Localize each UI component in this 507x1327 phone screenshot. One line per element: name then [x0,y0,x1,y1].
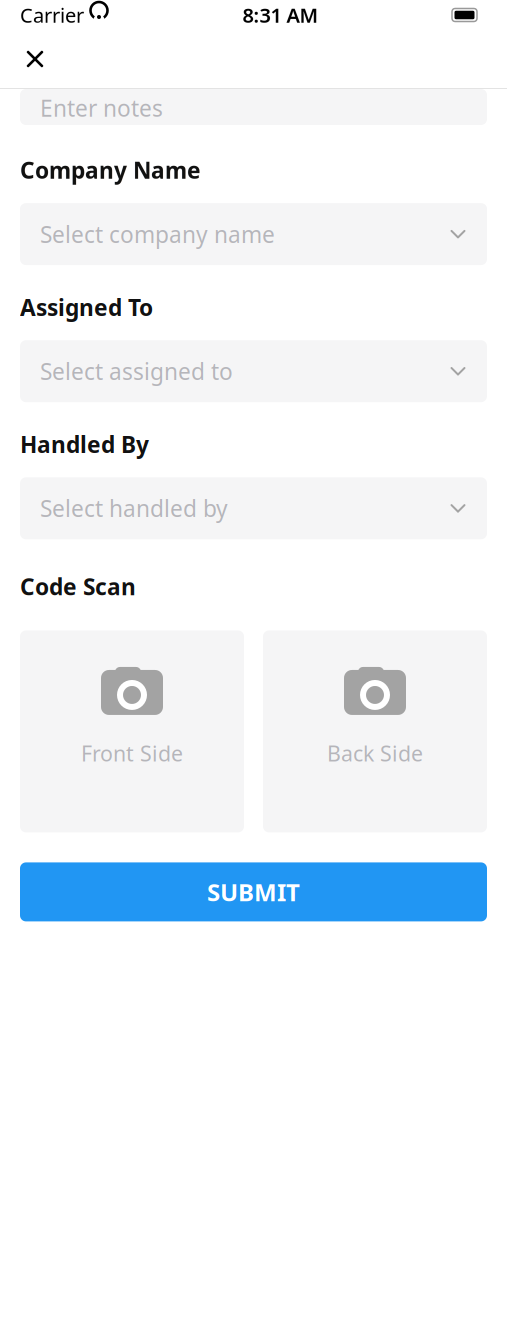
button[interactable]: Select company name [20,203,487,265]
button[interactable]: Select assigned to [20,340,487,402]
button[interactable]: Front Side [20,630,244,832]
staticText: Code Scan [20,571,136,601]
button[interactable]: Back Side [263,630,487,832]
staticText: Front Side [81,739,183,767]
staticText: SUBMIT [207,876,300,908]
button[interactable]: SUBMIT [20,862,487,921]
staticText: Enter notes [40,93,163,123]
staticText: Select assigned to [40,356,233,386]
staticText: Assigned To [20,292,153,322]
staticText: Back Side [327,739,423,767]
button[interactable]: Select handled by [20,477,487,539]
staticText: Company Name [20,155,201,185]
staticText: Select handled by [40,493,228,523]
staticText: Select company name [40,219,275,249]
staticText: Handled By [20,429,149,459]
